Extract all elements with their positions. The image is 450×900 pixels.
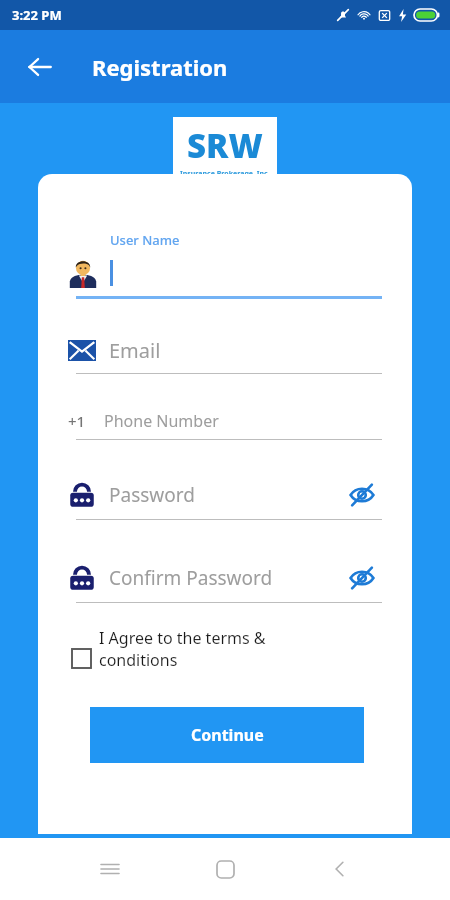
- staticText: Confirm Password: [109, 565, 273, 591]
- staticText: Phone Number: [104, 410, 219, 432]
- button[interactable]: [68, 254, 382, 292]
- staticText: User Name: [110, 231, 180, 249]
- staticText: Insurance Brokerage, Inc.: [180, 169, 270, 179]
- staticText: Continue: [191, 724, 264, 746]
- button[interactable]: Email: [68, 331, 382, 369]
- staticText: I Agree to the terms &: [99, 627, 266, 649]
- button[interactable]: Back: [320, 849, 360, 889]
- button[interactable]: Back: [18, 45, 62, 89]
- staticText: SRW: [187, 123, 263, 168]
- staticText: Registration: [92, 52, 228, 82]
- button[interactable]: Continue: [90, 707, 364, 763]
- button[interactable]: Show password: [342, 475, 382, 515]
- staticText: Password: [109, 482, 195, 508]
- button[interactable]: I Agree to the terms &: [72, 627, 266, 671]
- staticText: +1: [68, 411, 86, 431]
- button[interactable]: Home: [205, 849, 245, 889]
- staticText: Email: [109, 337, 161, 364]
- button[interactable]: +1: [68, 407, 382, 435]
- staticText: 3:22 PM: [12, 6, 62, 24]
- staticText: conditions: [99, 649, 178, 671]
- button[interactable]: Show confirm password: [342, 558, 382, 598]
- button[interactable]: Confirm Password: [68, 558, 382, 598]
- button[interactable]: Recent apps: [90, 849, 130, 889]
- button[interactable]: Password: [68, 475, 382, 515]
